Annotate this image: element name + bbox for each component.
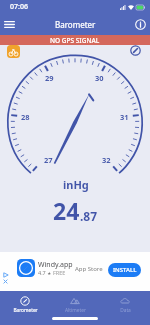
- staticText: Windy.app: [38, 260, 73, 270]
- staticText: Barometer: [55, 19, 96, 30]
- button[interactable]: Altimeter: [50, 291, 100, 320]
- staticText: Barometer: [13, 307, 38, 314]
- button[interactable]: Barometer: [0, 291, 50, 320]
- staticText: FREE: [53, 269, 66, 276]
- button[interactable]: INSTALL: [108, 263, 141, 277]
- button[interactable]: Information: [131, 15, 150, 34]
- staticText: inHg: [63, 177, 89, 192]
- staticText: NO GPS SIGNAL: [50, 36, 100, 45]
- staticText: 27: [44, 155, 53, 165]
- staticText: 24: [53, 195, 80, 226]
- staticText: 32: [102, 155, 111, 165]
- staticText: 30: [95, 73, 104, 83]
- staticText: App Store: [75, 265, 103, 273]
- staticText: .87: [80, 208, 98, 224]
- button[interactable]: Data: [100, 291, 150, 320]
- staticText: 28: [21, 112, 30, 122]
- staticText: 29: [45, 73, 54, 83]
- staticText: 31: [120, 112, 129, 122]
- button[interactable]: Open navigation menu: [0, 15, 19, 34]
- staticText: Altimeter: [65, 307, 86, 314]
- button[interactable]: App for You: [7, 45, 20, 58]
- button[interactable]: NO GPS SIGNAL: [0, 35, 150, 45]
- staticText: 4.7: [38, 269, 46, 276]
- staticText: Data: [120, 307, 131, 314]
- staticText: INSTALL: [113, 266, 137, 274]
- button[interactable]: Compass: [130, 45, 141, 56]
- staticText: 07:06: [10, 2, 28, 12]
- staticText: ★: [46, 270, 53, 276]
